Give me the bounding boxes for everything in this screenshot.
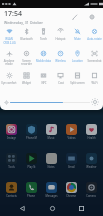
button[interactable]: Edit [68, 10, 82, 24]
button[interactable]: Messages [41, 182, 61, 211]
button[interactable]: Wi-Fi [86, 70, 103, 92]
staticText: Videos [67, 136, 76, 140]
button[interactable]: Mute [69, 26, 86, 48]
staticText: Tools [8, 165, 15, 169]
button[interactable]: Split screen [69, 70, 86, 92]
button[interactable]: Location [69, 48, 86, 70]
staticText: Widget [22, 81, 31, 85]
button[interactable]: Mobile data [35, 48, 52, 70]
staticText: Chrome [66, 194, 76, 198]
staticText: Wednesday, 31 October [4, 20, 44, 25]
button[interactable]: Widget [18, 70, 35, 92]
button[interactable]: Health [81, 124, 101, 153]
button[interactable]: Instagr [2, 124, 21, 153]
staticText: Camera [86, 194, 96, 198]
button[interactable]: Home [44, 200, 60, 216]
button[interactable]: Screenshot [86, 48, 103, 70]
staticText: Health [87, 136, 96, 140]
staticText: Music [47, 136, 55, 140]
button[interactable]: NFC [35, 70, 52, 92]
button[interactable]: Phone [21, 182, 41, 211]
button[interactable]: Videos [61, 124, 81, 153]
staticText: Weather [86, 165, 97, 169]
button[interactable]: Auto-rotate [86, 26, 103, 48]
staticText: Notes [47, 165, 55, 169]
staticText: 17:54 [4, 9, 22, 19]
staticText: Hotspot [55, 37, 66, 41]
button[interactable]: WLAN [0, 26, 18, 48]
staticText: Contacts [6, 194, 17, 198]
button[interactable]: Music [41, 124, 61, 153]
button[interactable]: Hotspot [52, 26, 69, 48]
staticText: Mute [74, 37, 81, 41]
staticText: Split screen [70, 81, 85, 85]
staticText: Mobile data [36, 59, 51, 63]
button[interactable]: Phone M [21, 124, 41, 153]
button[interactable]: Recents [73, 200, 89, 216]
staticText: Phone [27, 194, 35, 198]
staticText: Screen recorder [18, 59, 35, 66]
staticText: NFC [41, 81, 47, 85]
staticText: CRIS 2.4G [3, 41, 16, 45]
staticText: Cast [58, 81, 64, 85]
button[interactable]: Airplane mode [0, 48, 18, 70]
button[interactable]: Contacts [2, 182, 21, 211]
staticText: Location [72, 59, 83, 63]
staticText: WLAN [5, 37, 13, 41]
button[interactable]: Eye comfort [0, 70, 18, 92]
button[interactable]: Back [14, 200, 30, 216]
button[interactable]: Tools [2, 153, 21, 182]
staticText: Screenshot [87, 59, 102, 63]
button[interactable]: Cast [52, 70, 69, 92]
button[interactable]: Play St [21, 153, 41, 182]
staticText: Phone M [26, 136, 37, 140]
staticText: Messages [45, 194, 58, 198]
button[interactable]: Screen recorder [18, 48, 35, 70]
staticText: Play St [27, 165, 36, 169]
button[interactable]: Wireless [52, 48, 69, 70]
staticText: Airplane mode [0, 59, 18, 66]
staticText: Eye comfort [1, 81, 17, 85]
staticText: Torch [40, 37, 47, 41]
staticText: Bluetooth [20, 37, 33, 41]
staticText: Instagr [7, 136, 16, 140]
button[interactable]: Notes [41, 153, 61, 182]
button[interactable]: Camera [81, 182, 101, 211]
button[interactable]: Settings [85, 10, 99, 24]
staticText: Email [68, 165, 75, 169]
staticText: Auto-rotate [87, 37, 102, 41]
button[interactable]: Chrome [61, 182, 81, 211]
button[interactable]: Torch [35, 26, 52, 48]
staticText: Wi-Fi [91, 81, 98, 85]
button[interactable]: Weather [81, 153, 101, 182]
button[interactable]: Email [61, 153, 81, 182]
staticText: Wireless [55, 59, 66, 63]
button[interactable]: Bluetooth [18, 26, 35, 48]
